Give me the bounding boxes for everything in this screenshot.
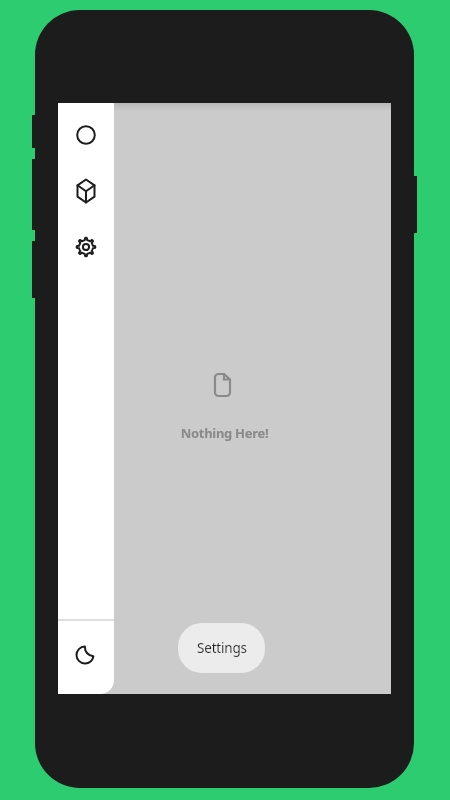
button[interactable] (63, 224, 109, 270)
staticText: Settings (197, 639, 247, 657)
button[interactable] (63, 168, 109, 214)
button[interactable] (63, 112, 109, 158)
button[interactable] (63, 631, 109, 677)
button[interactable]: Settings (178, 623, 265, 673)
staticText: Nothing Here! (58, 424, 391, 446)
